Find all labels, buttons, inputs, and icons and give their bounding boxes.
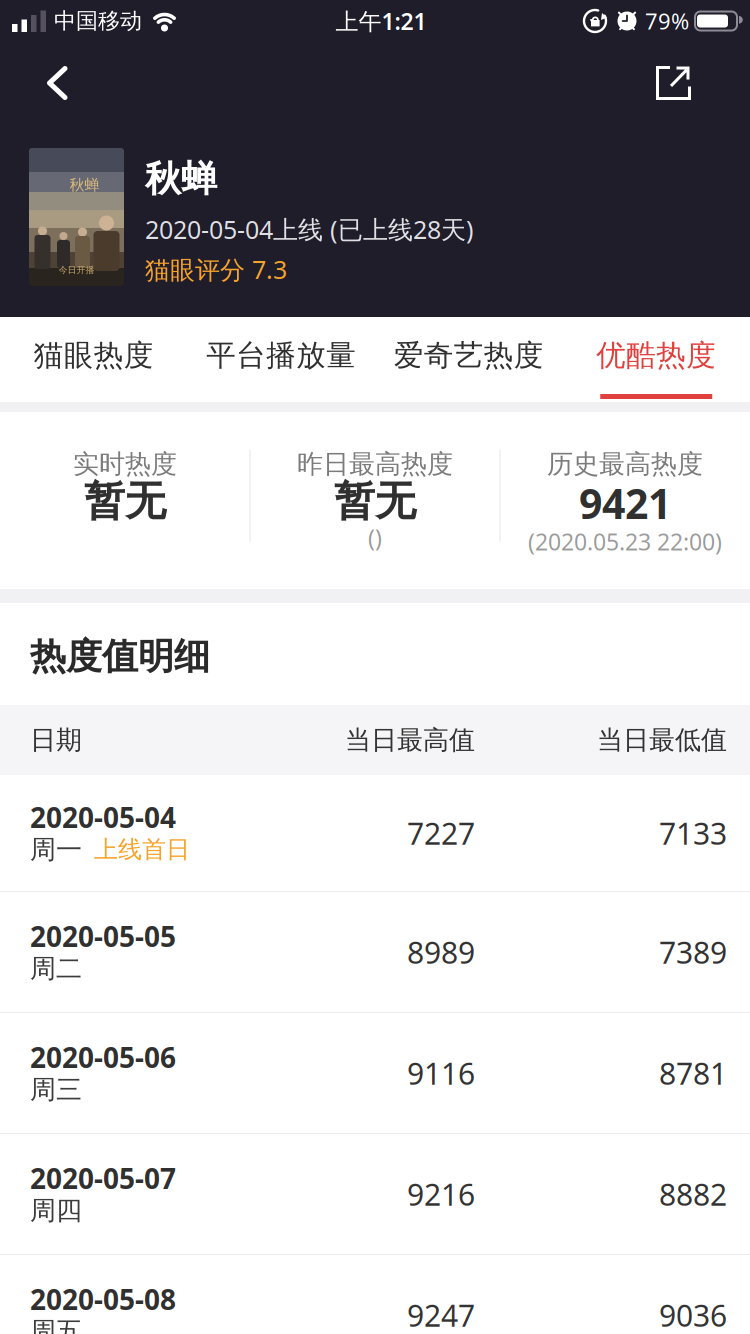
button[interactable]: 猫眼热度 <box>0 317 187 402</box>
staticText: 7389 <box>659 932 727 972</box>
staticText: 平台播放量 <box>206 337 356 374</box>
staticText: 猫眼热度 <box>34 337 154 374</box>
staticText: 日期 <box>30 724 82 756</box>
staticText: 周五 <box>30 1316 82 1334</box>
staticText: 8989 <box>407 932 475 972</box>
staticText: 周二 <box>30 953 82 984</box>
staticText: () <box>368 522 382 553</box>
button[interactable]: 平台播放量 <box>187 317 375 402</box>
staticText: 暂无 <box>84 476 166 526</box>
staticText: 9216 <box>407 1174 475 1214</box>
staticText: 周四 <box>30 1195 82 1226</box>
staticText: 2020-05-04上线 (已上线28天) <box>145 213 474 246</box>
staticText: 今日开播 <box>58 264 94 276</box>
staticText: 爱奇艺热度 <box>394 337 544 374</box>
staticText: 秋蝉 <box>145 157 217 201</box>
staticText: 9036 <box>659 1295 727 1334</box>
staticText: 暂无 <box>334 476 416 526</box>
button[interactable]: 优酷热度 <box>562 317 750 402</box>
staticText: 2020-05-05 <box>30 917 176 955</box>
staticText: 热度值明细 <box>30 634 210 679</box>
staticText: 2020-05-07 <box>30 1159 176 1197</box>
staticText: 猫眼评分 7.3 <box>145 253 287 286</box>
staticText: 周三 <box>30 1074 82 1105</box>
staticText: 2020-05-04 <box>30 798 176 836</box>
staticText: 当日最低值 <box>597 724 727 756</box>
staticText: 中国移动 <box>54 7 142 34</box>
staticText: 9421 <box>579 476 671 530</box>
staticText: 2020-05-08 <box>30 1280 176 1318</box>
staticText: 7227 <box>407 813 475 853</box>
staticText: 优酷热度 <box>596 337 716 374</box>
staticText: 当日最高值 <box>345 724 475 756</box>
staticText: (2020.05.23 22:00) <box>528 526 722 557</box>
staticText: 秋蝉 <box>69 176 99 194</box>
staticText: 9247 <box>407 1295 475 1334</box>
staticText: 上线首日 <box>94 835 190 864</box>
staticText: 79% <box>645 6 689 36</box>
staticText: 昨日最高热度 <box>297 448 453 480</box>
staticText: 9116 <box>407 1053 475 1093</box>
staticText: 7133 <box>659 813 727 853</box>
button[interactable]: Share <box>656 51 750 115</box>
button[interactable]: Back <box>0 51 68 115</box>
staticText: 历史最高热度 <box>547 448 703 480</box>
button[interactable]: 爱奇艺热度 <box>375 317 562 402</box>
staticText: 实时热度 <box>73 448 177 480</box>
staticText: 上午1:21 <box>335 6 426 36</box>
staticText: 8781 <box>659 1053 727 1093</box>
staticText: 2020-05-06 <box>30 1038 176 1076</box>
staticText: 周一 <box>30 834 82 865</box>
staticText: 8882 <box>659 1174 727 1214</box>
